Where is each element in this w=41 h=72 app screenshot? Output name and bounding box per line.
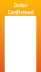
staticText: Order xyxy=(13,2,27,9)
staticText: Confirmed xyxy=(7,9,33,16)
